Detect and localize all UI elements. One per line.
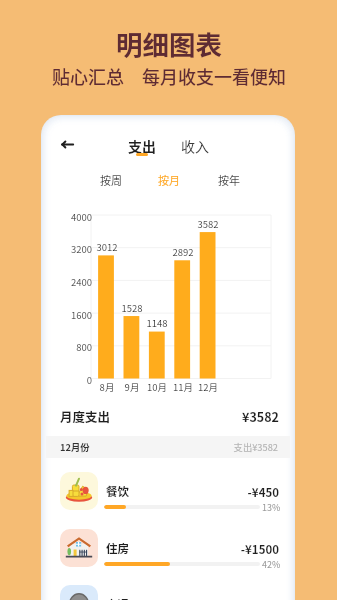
staticText: 12月 <box>191 380 225 394</box>
staticText: 按周 <box>100 172 122 188</box>
staticText: 42% <box>262 558 281 571</box>
staticText: 支出 <box>128 136 156 156</box>
staticText: 3200 <box>62 242 92 256</box>
staticText: 收入 <box>181 136 209 156</box>
staticText: 支出¥3582 <box>222 440 278 453</box>
staticText: -¥450 <box>237 484 279 501</box>
button[interactable] <box>46 466 290 516</box>
staticText: 11月 <box>166 380 200 394</box>
staticText: 按月 <box>158 172 180 188</box>
staticText: 1600 <box>62 308 92 322</box>
button[interactable]: 按月 <box>154 172 184 192</box>
staticText: 13% <box>262 501 281 514</box>
staticText: 2400 <box>62 275 92 289</box>
button[interactable]: 按周 <box>96 172 126 192</box>
staticText: 1528 <box>115 301 149 315</box>
staticText: 3012 <box>90 240 124 254</box>
staticText: 月度支出 <box>60 407 111 425</box>
staticText: 2892 <box>166 245 200 259</box>
staticText: 800 <box>62 340 92 354</box>
staticText: 明细图表 <box>116 24 222 62</box>
staticText: 8月 <box>90 380 124 394</box>
button[interactable]: 收入 <box>181 136 209 156</box>
staticText: 10月 <box>140 380 174 394</box>
staticText: 1148 <box>140 316 174 330</box>
staticText: 按年 <box>218 172 240 188</box>
staticText: 住房 <box>106 540 129 557</box>
staticText: 9月 <box>115 380 149 394</box>
staticText: 12月份 <box>60 440 90 453</box>
staticText: 餐饮 <box>106 483 129 500</box>
staticText: 4000 <box>62 210 92 224</box>
staticText: 交通 <box>106 596 129 600</box>
staticText: -¥1500 <box>237 541 279 558</box>
staticText: 0 <box>62 373 92 387</box>
staticText: 贴心汇总 每月收支一看便知 <box>52 63 286 89</box>
staticText: 3582 <box>191 217 225 231</box>
button[interactable] <box>46 579 290 600</box>
button[interactable]: Back <box>57 134 78 155</box>
button[interactable] <box>46 523 290 573</box>
staticText: ¥3582 <box>238 407 279 425</box>
button[interactable]: 支出 <box>128 136 156 156</box>
button[interactable]: 按年 <box>214 172 244 192</box>
